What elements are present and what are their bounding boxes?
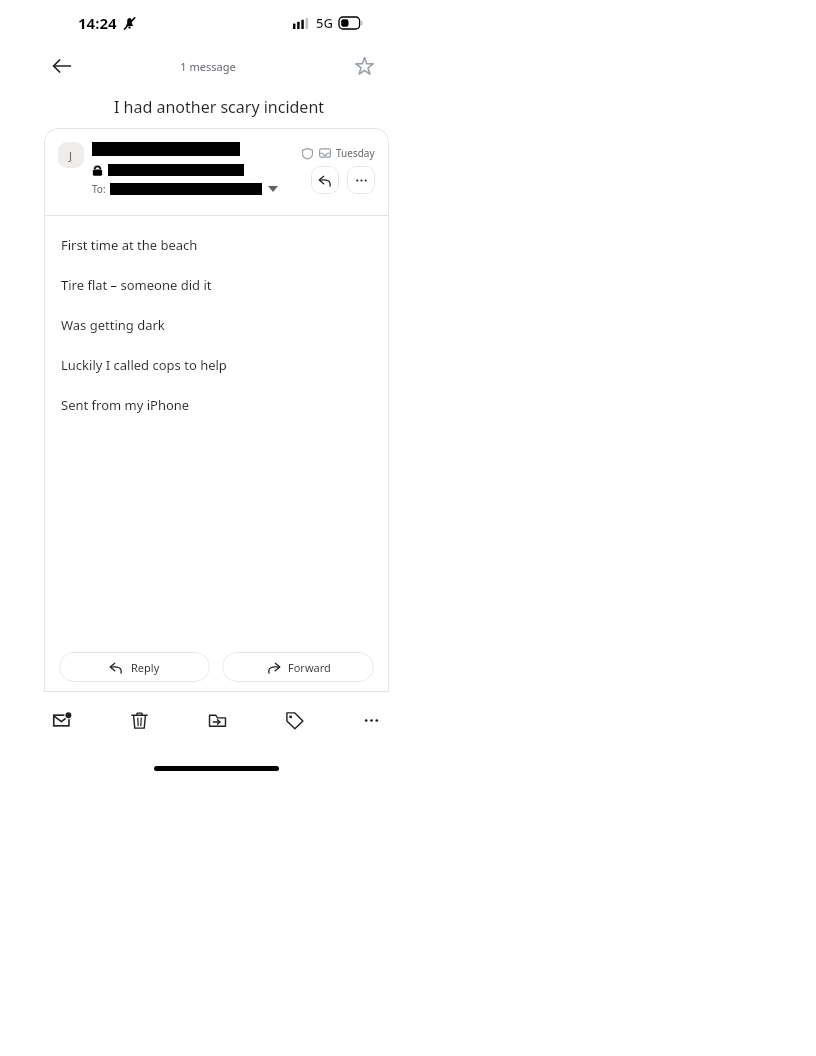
- staticText: Sent from my iPhone: [61, 396, 190, 414]
- button[interactable]: Reply: [311, 166, 339, 194]
- staticText: Luckily I called cops to help: [61, 356, 227, 374]
- staticText: Forward: [288, 660, 331, 675]
- button[interactable]: Back: [44, 48, 80, 84]
- staticText: Was getting dark: [61, 316, 165, 334]
- staticText: J: [69, 148, 73, 163]
- staticText: 14:24: [78, 13, 117, 33]
- button[interactable]: Reply: [59, 652, 210, 682]
- staticText: 1 message: [180, 59, 236, 74]
- button[interactable]: Label: [276, 702, 312, 738]
- staticText: 5G: [316, 14, 333, 32]
- button[interactable]: Delete: [121, 702, 157, 738]
- staticText: Tuesday: [336, 146, 375, 160]
- button[interactable]: Move to folder: [199, 702, 235, 738]
- staticText: I had another scary incident: [114, 96, 325, 118]
- button[interactable]: Sender avatar: [58, 142, 84, 168]
- button[interactable]: Star: [346, 48, 382, 84]
- staticText: To:: [92, 182, 106, 196]
- staticText: Reply: [131, 660, 160, 675]
- staticText: First time at the beach: [61, 236, 198, 254]
- button[interactable]: More: [353, 702, 389, 738]
- staticText: Tire flat – someone did it: [61, 276, 212, 294]
- button[interactable]: Mark unread: [44, 702, 80, 738]
- button[interactable]: Forward: [222, 652, 374, 682]
- button[interactable]: More options: [347, 166, 375, 194]
